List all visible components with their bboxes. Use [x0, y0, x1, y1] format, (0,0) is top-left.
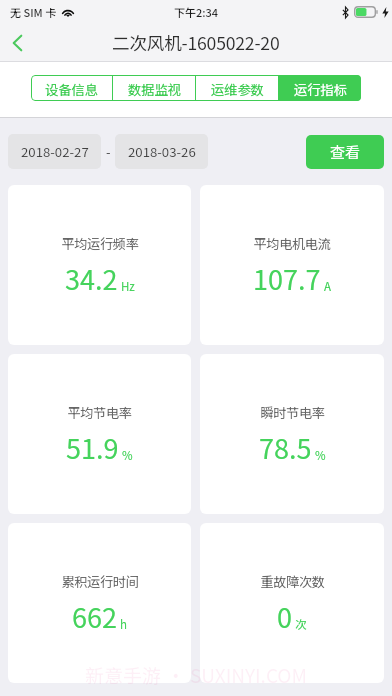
staticText: 数据监视: [128, 79, 181, 98]
button[interactable]: 累积运行时间: [8, 523, 191, 683]
button[interactable]: 设备信息: [31, 75, 112, 101]
staticText: 平均节电率: [67, 403, 132, 422]
staticText: ·: [162, 661, 190, 689]
button[interactable]: 平均节电率: [8, 354, 191, 514]
staticText: h: [120, 616, 127, 633]
button[interactable]: 平均电机电流: [200, 185, 384, 345]
staticText: 累积运行时间: [61, 572, 139, 591]
staticText: %: [315, 447, 326, 464]
staticText: 次: [295, 616, 307, 633]
button[interactable]: Back: [0, 24, 34, 61]
staticText: 0: [277, 597, 292, 636]
staticText: 34.2: [65, 259, 118, 298]
button[interactable]: 2018-02-27: [8, 134, 101, 169]
button[interactable]: 数据监视: [113, 75, 195, 101]
staticText: 平均运行频率: [61, 234, 139, 253]
button[interactable]: 查看: [306, 135, 384, 169]
staticText: 662: [72, 597, 117, 636]
staticText: 运维参数: [211, 79, 264, 98]
staticText: %: [122, 447, 133, 464]
staticText: 新意手游: [85, 661, 162, 689]
button[interactable]: 运行指标: [279, 75, 361, 101]
button[interactable]: 瞬时节电率: [200, 354, 384, 514]
staticText: 重故障次数: [260, 572, 325, 591]
staticText: 下午2:34: [174, 4, 219, 20]
staticText: 运行指标: [294, 79, 347, 98]
staticText: SUXINYI.COM: [190, 661, 307, 689]
staticText: 107.7: [253, 259, 321, 298]
staticText: 查看: [330, 141, 361, 163]
staticText: -: [106, 142, 111, 161]
staticText: 2018-02-27: [21, 142, 89, 161]
staticText: A: [324, 278, 331, 295]
button[interactable]: 重故障次数: [200, 523, 384, 683]
staticText: 二次风机-1605022-20: [112, 30, 280, 55]
button[interactable]: 运维参数: [196, 75, 278, 101]
staticText: 78.5: [259, 428, 312, 467]
staticText: 2018-03-26: [128, 142, 196, 161]
staticText: Hz: [121, 278, 135, 295]
button[interactable]: 2018-03-26: [115, 134, 208, 169]
staticText: 无 SIM 卡: [10, 4, 57, 20]
staticText: 51.9: [66, 428, 119, 467]
button[interactable]: 平均运行频率: [8, 185, 191, 345]
staticText: 瞬时节电率: [260, 403, 325, 422]
staticText: 平均电机电流: [253, 234, 331, 253]
staticText: 设备信息: [45, 79, 98, 98]
